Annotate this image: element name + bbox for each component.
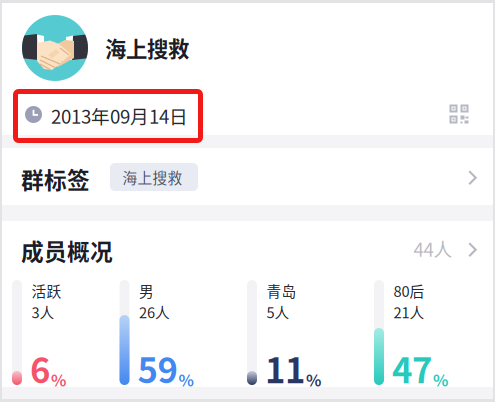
staticText: 47 bbox=[392, 343, 432, 393]
staticText: 80后 bbox=[393, 280, 424, 301]
button[interactable]: 群二维码 bbox=[444, 99, 474, 129]
staticText: % bbox=[433, 368, 448, 391]
staticText: 成员概况 bbox=[21, 234, 113, 267]
staticText: 青岛 bbox=[266, 280, 296, 301]
staticText: 6 bbox=[30, 343, 50, 393]
staticText: % bbox=[306, 368, 321, 391]
staticText: 男 bbox=[139, 280, 154, 301]
staticText: 群标签 bbox=[21, 162, 90, 195]
staticText: 11 bbox=[265, 343, 305, 393]
staticText: % bbox=[51, 368, 66, 391]
staticText: % bbox=[178, 368, 193, 391]
staticText: 26人 bbox=[139, 301, 170, 322]
staticText: 44人 bbox=[413, 235, 452, 262]
staticText: 5人 bbox=[266, 301, 289, 322]
button[interactable]: 成员概况 bbox=[2, 221, 493, 271]
staticText: 2013年09月14日 bbox=[51, 102, 188, 129]
staticText: 59 bbox=[137, 343, 177, 393]
staticText: 活跃 bbox=[31, 280, 61, 301]
staticText: 海上搜救 bbox=[122, 166, 182, 188]
button[interactable]: 群标签 bbox=[2, 148, 493, 205]
staticText: 海上搜救 bbox=[105, 33, 189, 63]
staticText: 21人 bbox=[393, 301, 424, 322]
staticText: 3人 bbox=[31, 301, 54, 322]
